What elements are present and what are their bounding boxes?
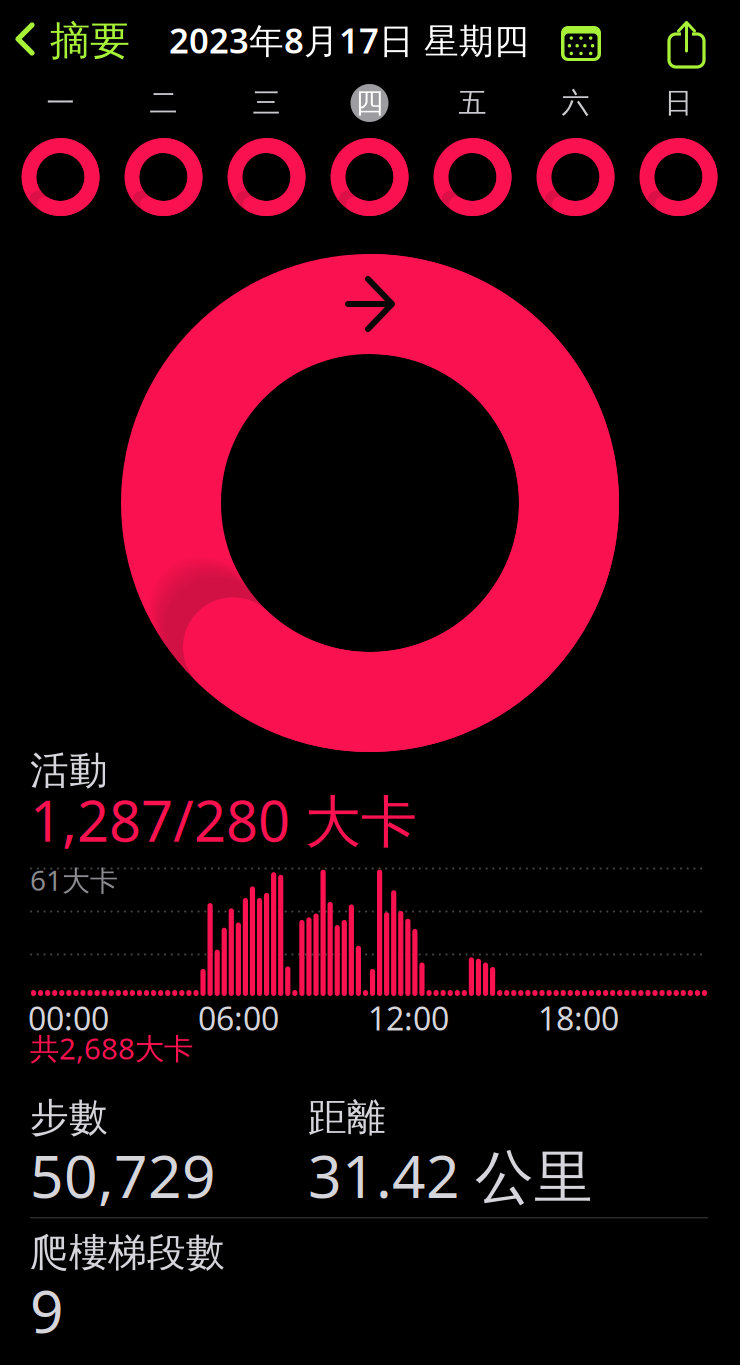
button[interactable]: 五 [421,81,524,215]
staticText: 61大卡 [30,861,118,899]
button[interactable]: Share [667,12,707,67]
staticText: 共2,688大卡 [30,1028,193,1067]
staticText: 日 [664,86,692,120]
button[interactable]: 四 [318,81,421,215]
staticText: 摘要 [50,16,130,65]
staticText: 步數 [30,1094,108,1141]
staticText: 爬樓梯段數 [30,1229,225,1276]
staticText: 2023年8月17日 星期四 [169,17,529,63]
staticText: 距離 [308,1094,386,1141]
staticText: 18:00 [538,997,619,1039]
button[interactable]: 摘要 [0,8,142,70]
staticText: 06:00 [198,997,279,1039]
staticText: 12:00 [368,997,449,1039]
staticText: 四 [355,86,383,120]
staticText: 50,729 [30,1136,216,1214]
staticText: 一 [46,86,74,120]
button[interactable]: 六 [524,81,627,215]
button[interactable]: 三 [215,81,318,215]
staticText: 五 [458,86,486,120]
staticText: 三 [252,86,280,120]
button[interactable]: 二 [112,81,215,215]
button[interactable]: Calendar [561,26,601,61]
staticText: 31.42 公里 [308,1136,593,1214]
staticText: 六 [561,86,589,120]
button[interactable]: 一 [9,81,112,215]
staticText: 1,287/280 大卡 [30,783,417,857]
staticText: 活動 [30,747,108,794]
staticText: 9 [30,1271,64,1349]
staticText: 00:00 [28,997,109,1039]
button[interactable]: 日 [627,81,730,215]
staticText: 二 [149,86,177,120]
